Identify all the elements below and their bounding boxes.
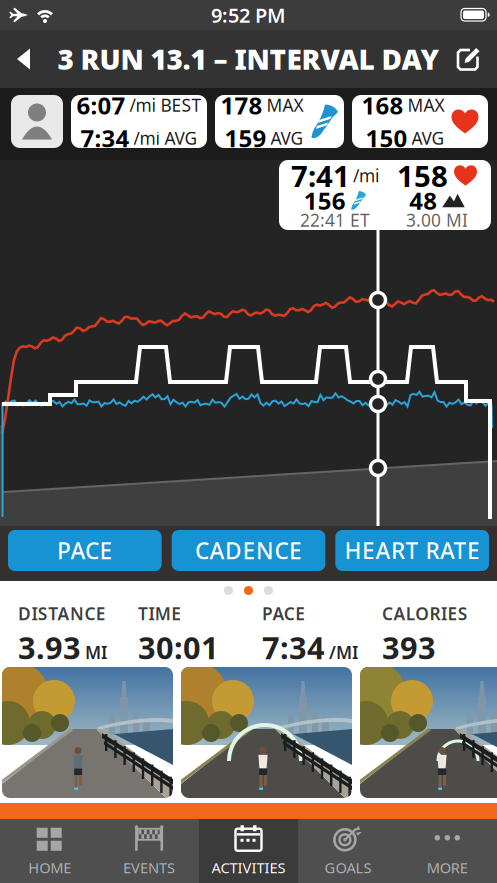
staticText: DISTANCE bbox=[18, 602, 106, 625]
staticText: 168 bbox=[361, 89, 403, 121]
staticText: /mi AVG bbox=[133, 126, 197, 149]
staticText: AVG bbox=[270, 126, 303, 149]
button[interactable]: GOALS bbox=[298, 819, 398, 883]
button[interactable]: Activity screenshot bbox=[181, 667, 352, 798]
staticText: CADENCE bbox=[195, 535, 302, 565]
button[interactable]: CADENCE bbox=[172, 530, 325, 571]
staticText: HEART RATE bbox=[344, 535, 480, 565]
staticText: 9:52 PM bbox=[211, 2, 286, 28]
staticText: ACTIVITIES bbox=[211, 858, 285, 877]
staticText: AVG bbox=[411, 126, 444, 149]
button[interactable]: Athlete profile bbox=[11, 95, 63, 148]
button[interactable]: ACTIVITIES bbox=[199, 819, 298, 883]
button[interactable]: MORE bbox=[398, 819, 497, 883]
staticText: GOALS bbox=[324, 858, 371, 877]
staticText: 22:41 ET bbox=[300, 208, 370, 231]
button[interactable]: PACE bbox=[8, 530, 162, 571]
staticText: 393 bbox=[382, 627, 436, 668]
staticText: 3.93 bbox=[18, 627, 81, 668]
staticText: 150 bbox=[365, 122, 407, 154]
staticText: PACE bbox=[57, 535, 113, 565]
staticText: 156 bbox=[304, 185, 346, 216]
staticText: 6:07 bbox=[76, 89, 125, 121]
staticText: MAX bbox=[266, 94, 303, 117]
staticText: /mi bbox=[353, 164, 379, 187]
staticText: TIME bbox=[138, 602, 181, 625]
staticText: 3.00 MI bbox=[406, 208, 468, 231]
button[interactable]: Activity screenshot bbox=[2, 667, 173, 798]
staticText: CALORIES bbox=[382, 602, 468, 625]
staticText: 159 bbox=[224, 122, 266, 154]
staticText: 48 bbox=[409, 185, 437, 216]
staticText: /MI bbox=[329, 641, 358, 664]
button[interactable]: Back bbox=[0, 40, 42, 77]
staticText: 158 bbox=[397, 156, 448, 195]
staticText: /mi BEST bbox=[129, 94, 201, 117]
staticText: MAX bbox=[407, 94, 444, 117]
staticText: MI bbox=[85, 641, 107, 664]
staticText: PACE bbox=[262, 602, 305, 625]
staticText: 178 bbox=[220, 89, 262, 121]
button[interactable]: Edit bbox=[446, 40, 497, 77]
staticText: 30:01 bbox=[138, 627, 219, 668]
staticText: 7:34 bbox=[80, 122, 129, 154]
button[interactable]: EVENTS bbox=[99, 819, 199, 883]
button[interactable]: HOME bbox=[0, 819, 99, 883]
staticText: 3 RUN 13.1 – INTERVAL DAY bbox=[57, 40, 439, 78]
staticText: 7:34 bbox=[262, 627, 325, 668]
staticText: HOME bbox=[28, 858, 71, 877]
button[interactable]: HEART RATE bbox=[335, 530, 489, 571]
button[interactable]: Activity screenshot bbox=[360, 667, 497, 798]
staticText: MORE bbox=[427, 858, 468, 877]
staticText: 7:41 bbox=[291, 156, 350, 195]
staticText: EVENTS bbox=[123, 858, 175, 877]
